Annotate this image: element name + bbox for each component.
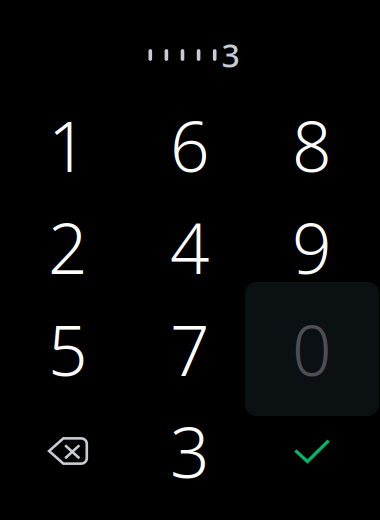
button[interactable]: Delete — [7, 400, 129, 502]
staticText: 1 — [48, 99, 88, 191]
staticText: 9 — [292, 201, 332, 293]
button[interactable]: 9 — [251, 196, 373, 298]
staticText: 0 — [292, 303, 332, 395]
button[interactable]: 4 — [129, 196, 251, 298]
staticText: 7 — [170, 303, 210, 395]
staticText: 3 — [170, 405, 210, 497]
button[interactable]: 7 — [129, 298, 251, 400]
button[interactable]: 1 — [7, 94, 129, 196]
button[interactable]: Confirm passcode — [251, 400, 373, 502]
staticText: 3 — [221, 34, 239, 76]
button[interactable]: 3 — [129, 400, 251, 502]
staticText: 2 — [48, 201, 88, 293]
button[interactable]: 0 — [251, 298, 373, 400]
staticText: 5 — [48, 303, 88, 395]
button[interactable]: 2 — [7, 196, 129, 298]
staticText: 4 — [170, 201, 210, 293]
button[interactable]: 8 — [251, 94, 373, 196]
button[interactable]: 6 — [129, 94, 251, 196]
button[interactable]: 5 — [7, 298, 129, 400]
staticText: 8 — [292, 99, 332, 191]
staticText: 6 — [170, 99, 210, 191]
